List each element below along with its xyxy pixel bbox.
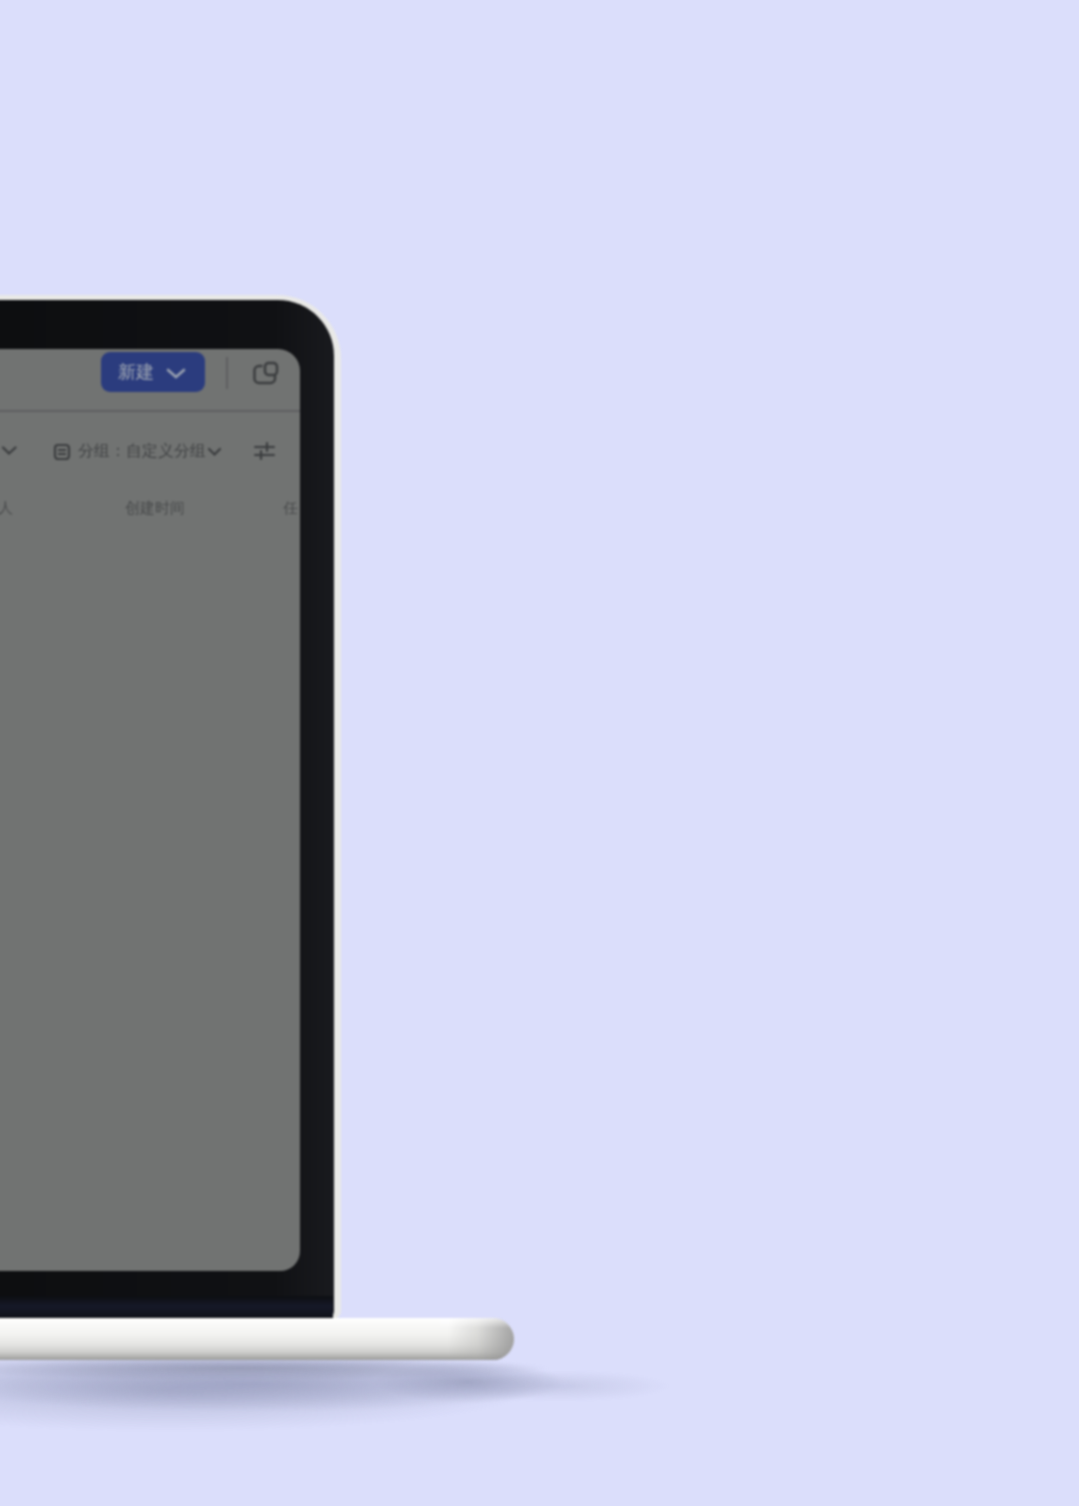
staticText: 任: [283, 499, 298, 518]
staticText: 新建: [118, 361, 154, 384]
staticText: 创建时间: [125, 499, 185, 518]
button[interactable]: [250, 357, 286, 389]
button[interactable]: 新建: [101, 352, 205, 392]
button[interactable]: [250, 439, 278, 465]
staticText: 人: [0, 499, 13, 518]
staticText: 分组：: [78, 441, 126, 461]
staticText: 自定义分组: [126, 441, 206, 461]
button[interactable]: 分组：: [48, 437, 226, 467]
